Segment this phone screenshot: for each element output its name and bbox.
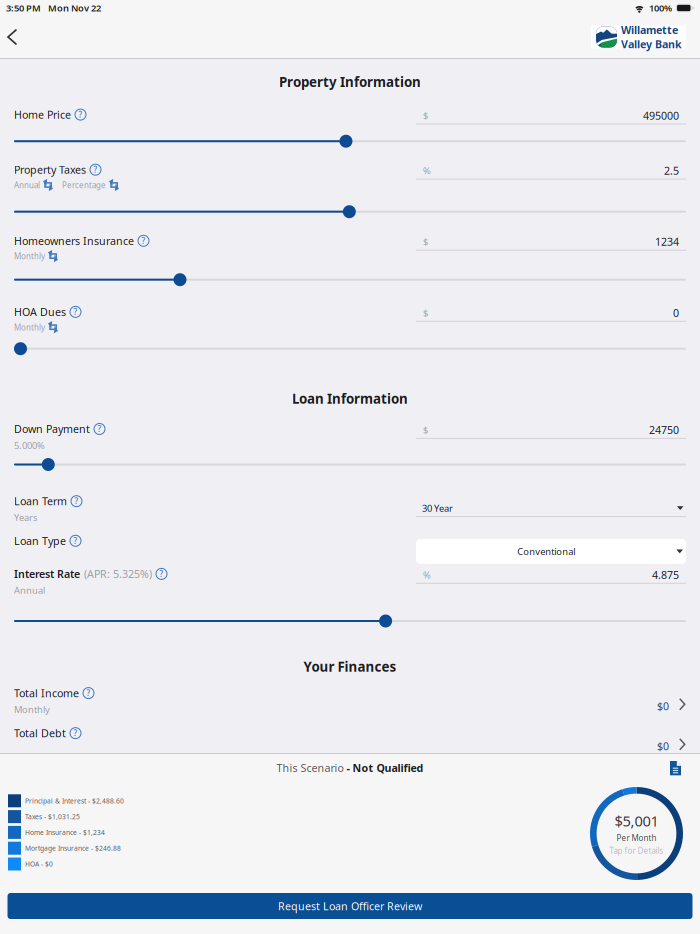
staticText: Taxes - $1,031.25	[25, 812, 80, 821]
staticText: 0	[673, 306, 679, 320]
staticText: HOA Dues	[14, 305, 66, 319]
staticText: Annual	[14, 584, 45, 596]
staticText: 495000	[643, 108, 679, 123]
button[interactable]: View loan document	[670, 761, 681, 775]
staticText: $	[423, 424, 428, 436]
button[interactable]: Monthly	[14, 251, 58, 261]
staticText: $	[423, 235, 428, 248]
staticText: Loan Term	[14, 494, 67, 508]
button[interactable]: Monthly	[14, 322, 58, 333]
staticText: $5,001	[614, 811, 658, 831]
button[interactable]: Total Debt	[0, 726, 700, 753]
button[interactable]: Property Taxes value	[416, 163, 686, 180]
button[interactable]: Down Payment value	[416, 422, 686, 439]
staticText: 24750	[649, 423, 679, 437]
staticText: Monthly	[14, 703, 50, 716]
staticText: %	[423, 164, 431, 177]
staticText: ?	[86, 688, 90, 698]
staticText: Property Taxes	[14, 163, 86, 177]
button[interactable]: Willamette Valley Bank	[591, 25, 686, 48]
button[interactable]: Annual	[14, 180, 53, 190]
staticText: ?	[93, 164, 97, 175]
staticText: Home Price	[14, 107, 71, 122]
staticText: Total Debt	[14, 726, 66, 740]
staticText: Tap for Details	[609, 845, 663, 856]
staticText: Request Loan Officer Review	[278, 899, 422, 913]
button[interactable]: Interest rate value	[416, 567, 686, 584]
staticText: Loan Type	[14, 534, 66, 548]
staticText: $	[423, 307, 428, 319]
staticText: 1234	[655, 235, 679, 249]
staticText: - Not Qualified	[346, 761, 423, 775]
button[interactable]: About Property Taxes	[90, 164, 101, 175]
button[interactable]: About Loan Term	[71, 496, 82, 507]
staticText: Loan Information	[292, 390, 408, 407]
staticText: Mortgage Insurance - $246.88	[25, 844, 121, 853]
staticText: ?	[141, 235, 145, 246]
staticText: HOA - $0	[25, 860, 53, 868]
staticText: 5.000%	[14, 439, 45, 451]
staticText: Annual	[14, 180, 40, 190]
staticText: Monthly	[14, 322, 45, 333]
staticText: This Scenario	[276, 761, 346, 775]
staticText: 30 Year	[422, 502, 453, 514]
staticText: Down Payment	[14, 422, 90, 436]
button[interactable]: About Down Payment	[94, 423, 105, 434]
button[interactable]: Total Income	[0, 686, 700, 716]
button[interactable]: About Loan Type	[70, 535, 81, 546]
staticText: $0	[657, 699, 669, 713]
staticText: (APR: 5.325%)	[84, 567, 152, 581]
staticText: 3:50 PM	[6, 2, 41, 14]
staticText: Total Income	[14, 686, 79, 700]
staticText: Conventional	[517, 545, 575, 558]
button[interactable]: Homeowners Insurance value	[416, 234, 686, 251]
staticText: Homeowners Insurance	[14, 234, 134, 248]
button[interactable]: Back	[0, 16, 36, 58]
staticText: Willamette	[621, 23, 678, 37]
button[interactable]: About Home Price	[75, 109, 86, 120]
staticText: Principal & Interest - $2,488.60	[25, 796, 124, 805]
staticText: Mon Nov 22	[48, 2, 101, 14]
staticText: Percentage	[62, 180, 106, 190]
button[interactable]: Request Loan Officer Review	[7, 893, 692, 919]
staticText: ?	[73, 535, 77, 546]
button[interactable]: About HOA Dues	[70, 306, 81, 317]
staticText: Valley Bank	[621, 37, 682, 51]
staticText: Monthly	[14, 251, 45, 261]
staticText: Years	[14, 511, 37, 524]
staticText: ?	[74, 496, 78, 506]
staticText: Your Finances	[303, 658, 396, 675]
button[interactable]: Percentage	[62, 180, 119, 190]
button[interactable]: About Homeowners Insurance	[138, 235, 149, 246]
staticText: ?	[73, 728, 77, 738]
staticText: Per Month	[616, 833, 656, 843]
staticText: 4.875	[652, 568, 679, 582]
button[interactable]: Home Price value	[416, 107, 686, 124]
staticText: 100%	[649, 2, 672, 14]
staticText: 2.5	[664, 163, 679, 178]
staticText: ?	[97, 424, 101, 434]
staticText: $	[423, 109, 428, 122]
staticText: ?	[78, 109, 82, 120]
staticText: Interest Rate	[14, 567, 80, 581]
button[interactable]: Loan type: Conventional	[416, 539, 686, 564]
staticText: $0	[657, 739, 669, 753]
button[interactable]: Loan term: 30 Year	[416, 500, 686, 517]
staticText: ?	[73, 307, 77, 317]
staticText: ?	[159, 569, 163, 579]
button[interactable]: HOA Dues value	[416, 305, 686, 322]
button[interactable]: About Interest Rate	[156, 568, 167, 579]
staticText: Property Information	[279, 73, 421, 91]
staticText: %	[423, 569, 431, 581]
button[interactable]: Monthly payment $5,001, tap for details	[590, 787, 683, 880]
staticText: Home Insurance - $1,234	[25, 828, 105, 837]
